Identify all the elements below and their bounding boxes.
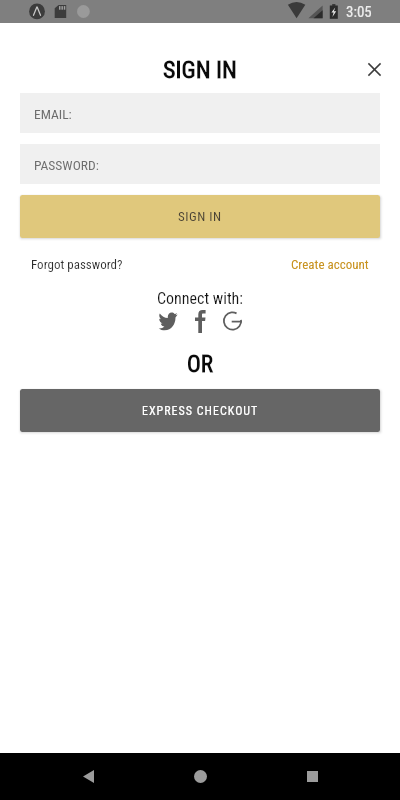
- button[interactable]: Recents: [288, 753, 336, 800]
- button[interactable]: Close: [358, 53, 390, 85]
- button[interactable]: Back: [64, 753, 112, 800]
- staticText: Create account: [291, 257, 369, 272]
- staticText: Connect with:: [0, 289, 400, 308]
- button[interactable]: PASSWORD:: [20, 144, 380, 184]
- staticText: OR: [0, 351, 400, 378]
- staticText: SIGN IN: [178, 209, 222, 224]
- button[interactable]: Google: [216, 309, 250, 333]
- button[interactable]: Twitter: [150, 309, 184, 333]
- button[interactable]: Create account: [291, 257, 369, 272]
- button[interactable]: SIGN IN: [20, 195, 380, 238]
- staticText: PASSWORD:: [34, 157, 99, 173]
- button[interactable]: EXPRESS CHECKOUT: [20, 389, 380, 432]
- staticText: 3:05: [346, 3, 372, 21]
- button[interactable]: Facebook: [184, 309, 216, 333]
- staticText: EXPRESS CHECKOUT: [142, 404, 259, 418]
- button[interactable]: Forgot password?: [31, 257, 123, 272]
- staticText: SIGN IN: [163, 56, 237, 84]
- button[interactable]: EMAIL:: [20, 93, 380, 133]
- staticText: Forgot password?: [31, 257, 123, 272]
- button[interactable]: Home: [176, 753, 224, 800]
- staticText: EMAIL:: [34, 106, 72, 122]
